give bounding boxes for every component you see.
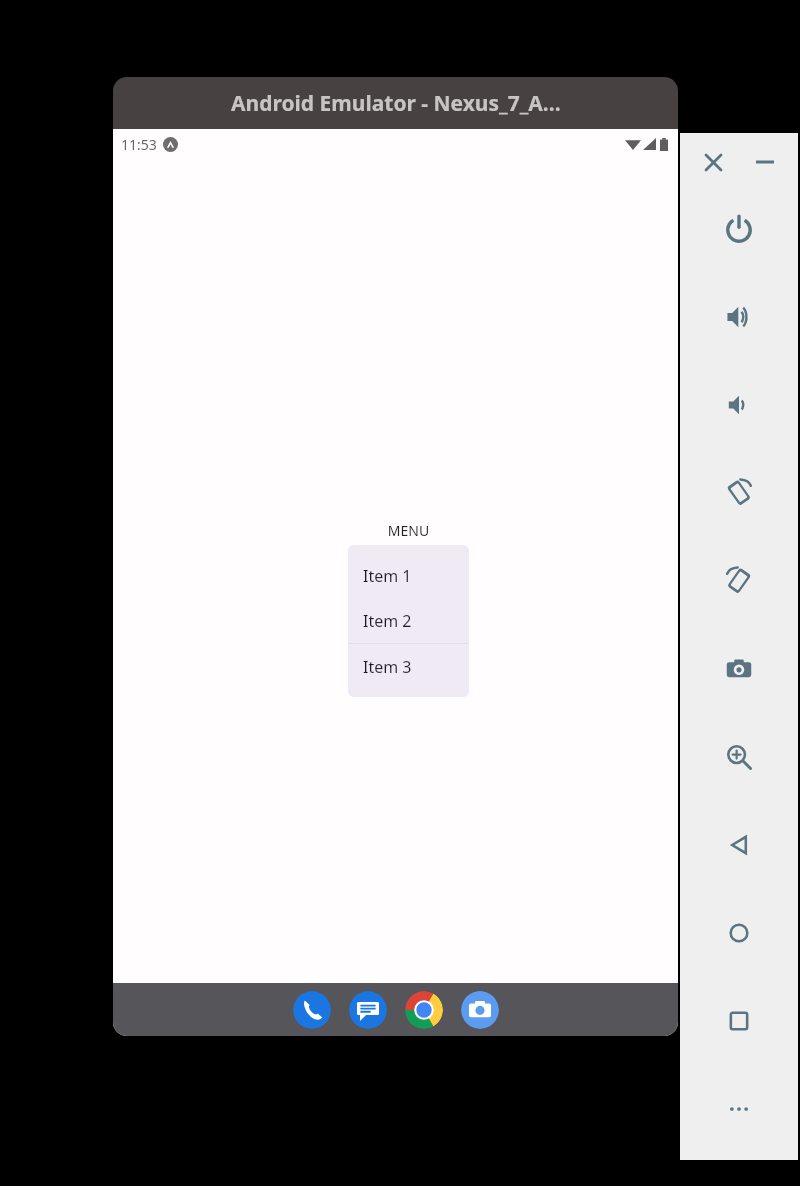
button[interactable]: Chrome [405,991,443,1029]
button[interactable]: Item 3 [348,644,469,689]
staticText: MENU [348,521,469,540]
button[interactable]: Home [680,906,798,960]
button[interactable]: Overview [680,994,798,1048]
button[interactable]: Camera [461,991,499,1029]
button[interactable]: Phone [293,991,331,1029]
button[interactable]: Rotate right [680,554,798,608]
button[interactable]: Rotate left [680,466,798,520]
button[interactable]: Item 2 [348,598,469,643]
button[interactable]: Minimize [746,143,784,181]
staticText: 11:53 [121,135,157,154]
staticText: Android Emulator - Nexus_7_A... [231,89,561,118]
button[interactable]: Close [694,143,732,181]
staticText: Item 2 [363,610,412,632]
staticText: Item 3 [363,656,412,678]
button[interactable]: Messages [349,991,387,1029]
button[interactable]: Zoom in [680,730,798,784]
button[interactable]: Volume down [680,378,798,432]
button[interactable]: Item 1 [348,553,469,598]
button[interactable]: More [680,1082,798,1136]
staticText: Item 1 [363,565,412,587]
button[interactable]: Screenshot [680,642,798,696]
button[interactable]: Back [680,818,798,872]
button[interactable]: Volume up [680,290,798,344]
button[interactable]: Power [680,202,798,256]
